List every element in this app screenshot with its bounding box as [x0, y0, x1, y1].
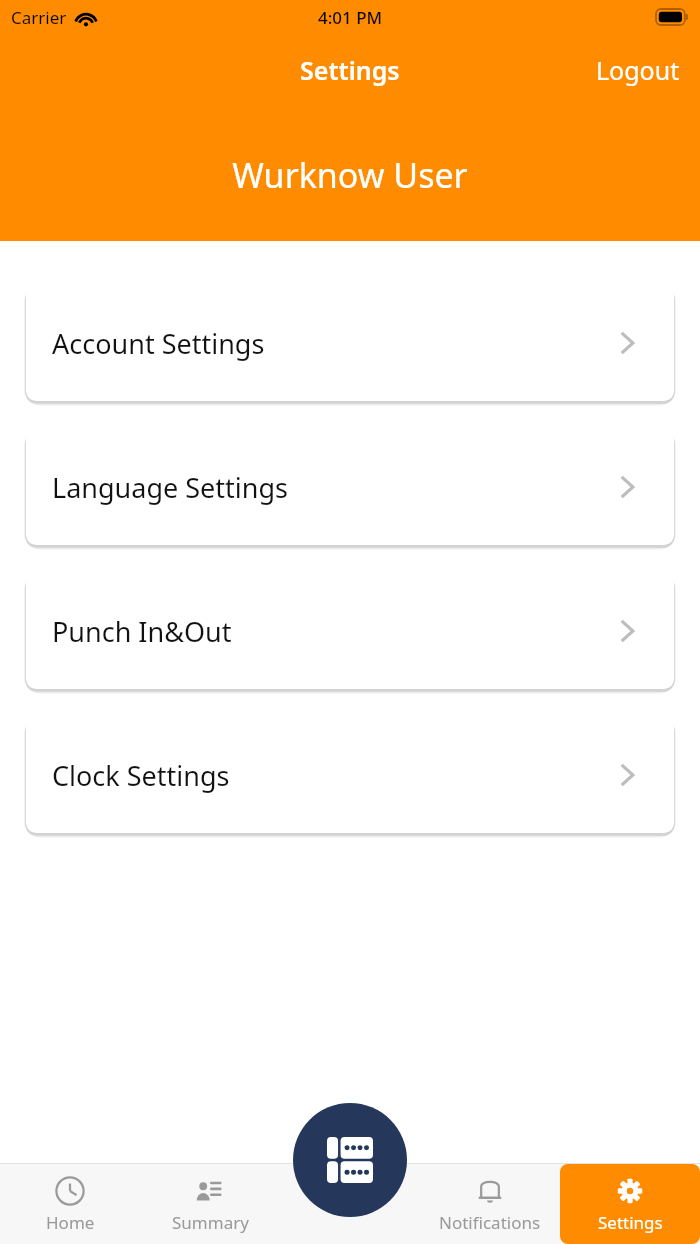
staticText: Settings	[300, 53, 400, 87]
button[interactable]: Notifications	[420, 1163, 560, 1244]
staticText: Settings	[598, 1211, 663, 1234]
staticText: Wurknow User	[0, 152, 700, 198]
staticText: Carrier	[11, 6, 67, 29]
button[interactable]: Summary	[140, 1163, 280, 1244]
staticText: Summary	[172, 1211, 249, 1234]
button[interactable]: Timesheet	[293, 1103, 407, 1217]
button[interactable]: Account Settings	[26, 285, 674, 401]
button[interactable]: Logout	[576, 47, 700, 93]
button[interactable]: Home	[0, 1163, 140, 1244]
staticText: Home	[46, 1211, 95, 1234]
button[interactable]: Settings	[560, 1164, 700, 1244]
staticText: Notifications	[439, 1211, 541, 1234]
staticText: Account Settings	[52, 325, 265, 362]
button[interactable]: Clock Settings	[26, 717, 674, 833]
staticText: Clock Settings	[52, 757, 230, 794]
staticText: 4:01 PM	[318, 6, 383, 29]
staticText: Logout	[596, 53, 680, 87]
button[interactable]: Language Settings	[26, 429, 674, 545]
staticText: Punch In&Out	[52, 613, 232, 650]
button[interactable]: Punch In&Out	[26, 573, 674, 689]
staticText: Language Settings	[52, 469, 289, 506]
